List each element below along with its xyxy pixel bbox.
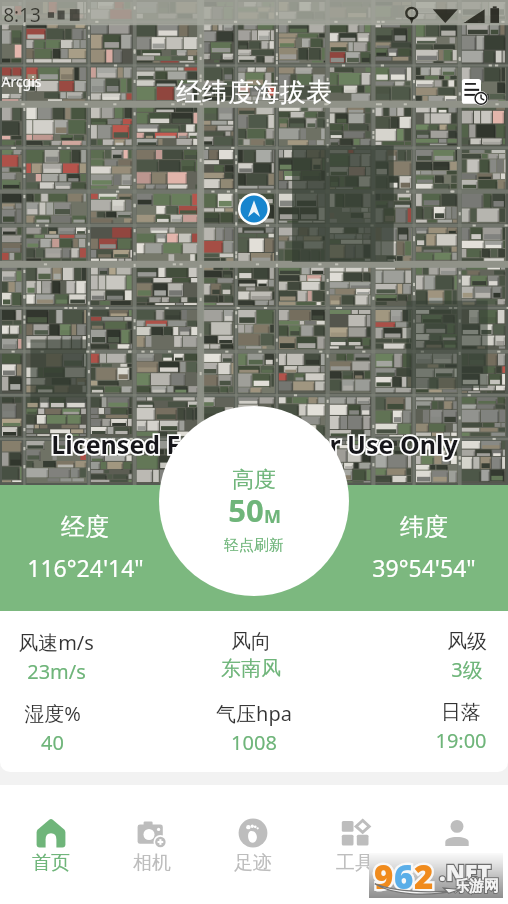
staticText: 风速m/s [18,629,94,656]
button[interactable]: 首页 [0,785,101,875]
staticText: 足迹 [234,851,272,875]
button[interactable]: 我的 [406,785,508,875]
staticText: 1008 [231,729,277,756]
staticText: 风级 [447,629,487,654]
button[interactable]: History records [458,76,490,108]
staticText: 相机 [133,851,171,875]
staticText: 气压hpa [216,700,292,727]
staticText: 9 [374,854,394,899]
staticText: 39°54'54" [372,552,476,583]
staticText: M [264,504,281,529]
staticText: 23m/s [27,658,86,685]
staticText: 经度 [61,512,109,542]
button[interactable]: 相机 [101,785,202,875]
staticText: 高度 [232,466,276,494]
staticText: Arcgis [1,72,42,91]
staticText: 日落 [441,700,481,725]
staticText: 2 [414,854,434,899]
staticText: 首页 [32,851,70,875]
staticText: .NET [439,856,492,887]
staticText: 8:13 [3,2,41,28]
staticText: 纬度 [400,512,448,542]
staticText: 19:00 [435,727,487,754]
button[interactable]: 足迹 [202,785,304,875]
button[interactable]: 工具 [304,785,406,875]
staticText: .NET [439,856,492,887]
staticText: 我的 [438,851,476,875]
staticText: 50 [228,489,264,531]
staticText: 9 [374,854,394,899]
staticText: 2 [414,854,434,899]
staticText: Licensed For Developer Use Only [51,427,458,461]
staticText: 40 [41,729,64,756]
staticText: 6 [394,854,414,899]
staticText: 6 [394,854,414,899]
staticText: 经纬度海拔表 [176,76,332,109]
staticText: 乐游网 [454,877,499,896]
staticText: 湿度% [24,700,81,727]
staticText: 东南风 [221,656,281,681]
staticText: Licensed For Developer Use Only [51,427,458,461]
staticText: 轻点刷新 [224,536,284,555]
staticText: 116°24'14" [27,552,144,583]
staticText: 乐游网 [454,877,499,896]
staticText: 工具 [336,851,374,875]
button[interactable]: 高度 [159,406,349,596]
staticText: 风向 [231,629,271,654]
staticText: 3级 [451,656,483,683]
